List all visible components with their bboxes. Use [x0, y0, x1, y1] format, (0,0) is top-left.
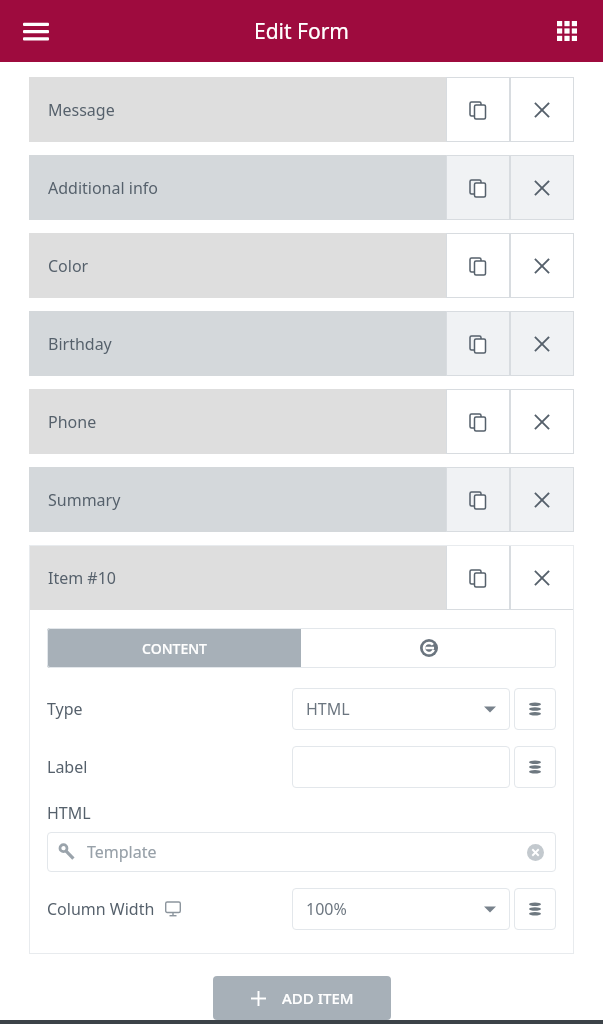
- button[interactable]: Remove Birthday: [510, 311, 574, 376]
- button[interactable]: [292, 746, 510, 788]
- staticText: Template: [87, 841, 157, 863]
- button[interactable]: Duplicate Birthday: [446, 311, 510, 376]
- button[interactable]: HTML: [292, 688, 510, 730]
- button[interactable]: Remove Summary: [510, 467, 574, 532]
- button[interactable]: Apps: [545, 9, 589, 53]
- staticText: Item #10: [48, 567, 116, 589]
- button[interactable]: Item #10: [29, 545, 446, 610]
- button[interactable]: Color: [29, 233, 446, 298]
- button[interactable]: Duplicate Summary: [446, 467, 510, 532]
- staticText: Summary: [48, 489, 121, 511]
- staticText: Edit Form: [254, 17, 349, 46]
- button[interactable]: Remove Phone: [510, 389, 574, 454]
- staticText: Color: [48, 255, 89, 277]
- button[interactable]: 100%: [292, 888, 510, 930]
- button[interactable]: Duplicate Message: [446, 77, 510, 142]
- staticText: Additional info: [48, 177, 158, 199]
- staticText: CONTENT: [142, 639, 207, 658]
- button[interactable]: Remove Color: [510, 233, 574, 298]
- button[interactable]: Message: [29, 77, 446, 142]
- button[interactable]: Duplicate Phone: [446, 389, 510, 454]
- button[interactable]: Type data source: [514, 688, 556, 730]
- button[interactable]: Remove Additional info: [510, 155, 574, 220]
- button[interactable]: Menu: [14, 9, 58, 53]
- button[interactable]: Birthday: [29, 311, 446, 376]
- staticText: Phone: [48, 411, 97, 433]
- button[interactable]: Column Width data source: [514, 888, 556, 930]
- button[interactable]: Remove Message: [510, 77, 574, 142]
- button[interactable]: ADD ITEM: [213, 976, 391, 1020]
- button[interactable]: Duplicate Item #10: [446, 545, 510, 610]
- button[interactable]: Additional info: [29, 155, 446, 220]
- button[interactable]: Duplicate Additional info: [446, 155, 510, 220]
- staticText: HTML: [47, 802, 91, 824]
- button[interactable]: Template: [47, 832, 556, 872]
- button[interactable]: Remove Item #10: [510, 545, 574, 610]
- staticText: Message: [48, 99, 115, 121]
- staticText: 100%: [306, 898, 347, 920]
- staticText: Label: [47, 756, 88, 778]
- staticText: HTML: [306, 698, 350, 720]
- staticText: Birthday: [48, 333, 112, 355]
- button[interactable]: Duplicate Color: [446, 233, 510, 298]
- button[interactable]: Summary: [29, 467, 446, 532]
- button[interactable]: Label data source: [514, 746, 556, 788]
- staticText: ADD ITEM: [282, 988, 354, 1008]
- button[interactable]: Phone: [29, 389, 446, 454]
- staticText: Type: [47, 698, 83, 720]
- staticText: Column Width: [47, 898, 155, 920]
- button[interactable]: CONTENT: [47, 628, 301, 668]
- button[interactable]: Advanced: [301, 628, 556, 668]
